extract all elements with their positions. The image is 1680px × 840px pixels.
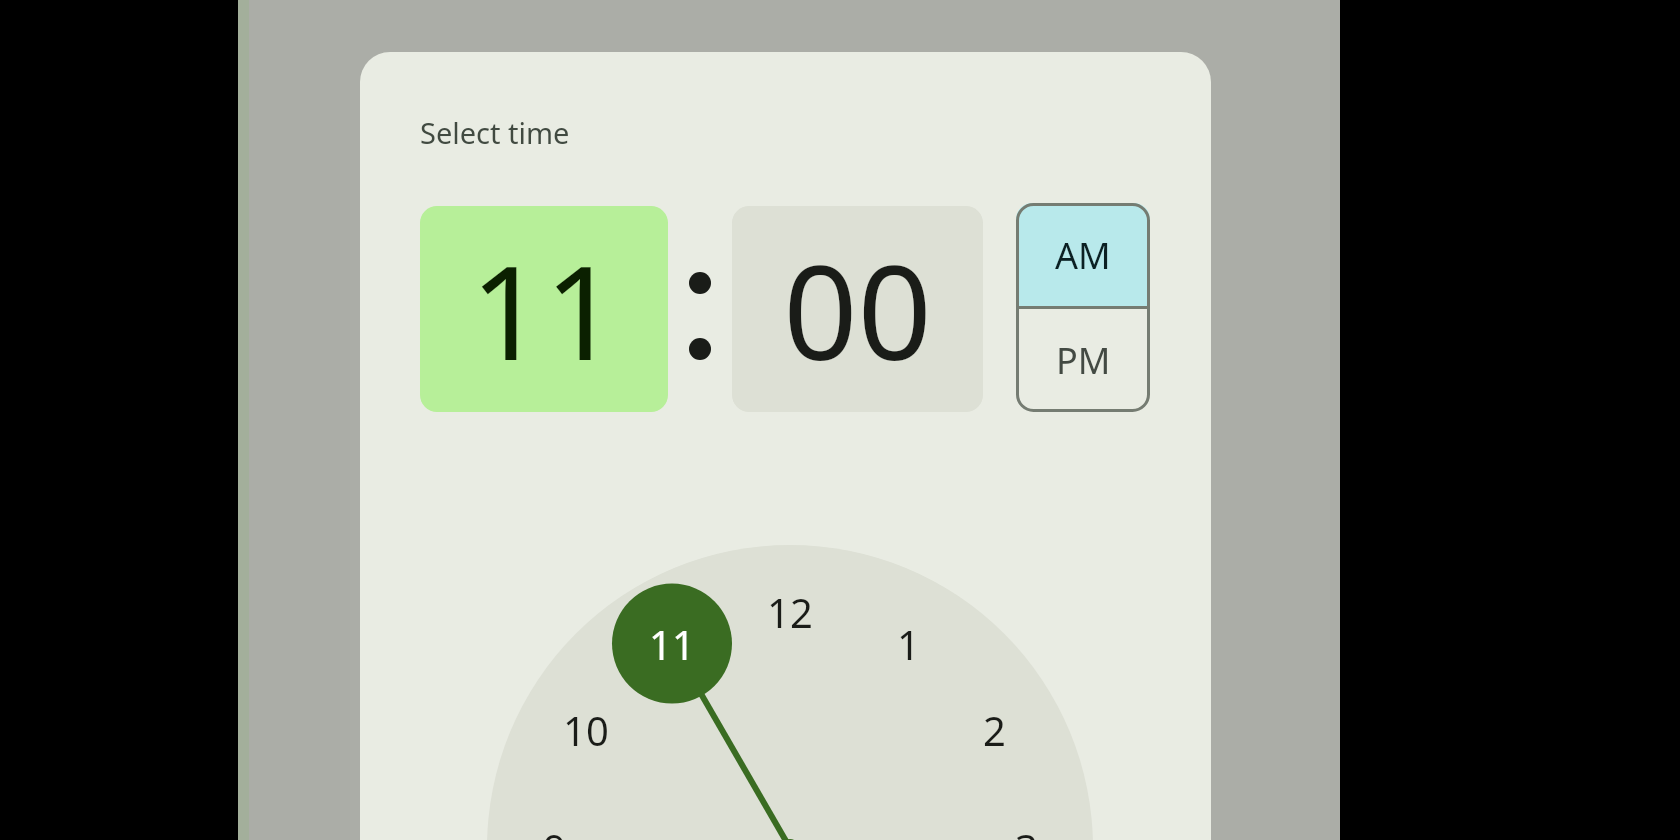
- staticText: 12: [767, 585, 813, 639]
- staticText: 00: [783, 221, 932, 398]
- staticText: 9: [543, 821, 566, 840]
- button[interactable]: 9: [514, 816, 594, 840]
- staticText: 1: [897, 617, 920, 671]
- button[interactable]: AM: [1016, 203, 1150, 308]
- staticText: 2: [983, 703, 1006, 757]
- button[interactable]: 00: [732, 206, 983, 412]
- staticText: 10: [563, 703, 609, 757]
- button[interactable]: 11: [632, 612, 712, 676]
- staticText: Select time: [420, 113, 570, 152]
- staticText: PM: [1056, 336, 1111, 385]
- staticText: 11: [649, 617, 695, 671]
- button[interactable]: 12: [750, 580, 830, 644]
- staticText: AM: [1055, 231, 1111, 280]
- staticText: 11: [470, 221, 619, 398]
- button[interactable]: PM: [1016, 308, 1150, 412]
- button[interactable]: 10: [546, 698, 626, 762]
- button[interactable]: 11: [420, 206, 668, 412]
- staticText: 3: [1015, 821, 1038, 840]
- other: AM PM selector: [1016, 203, 1150, 412]
- button[interactable]: 1: [868, 612, 948, 676]
- button[interactable]: 3: [986, 816, 1066, 840]
- button[interactable]: 2: [954, 698, 1034, 762]
